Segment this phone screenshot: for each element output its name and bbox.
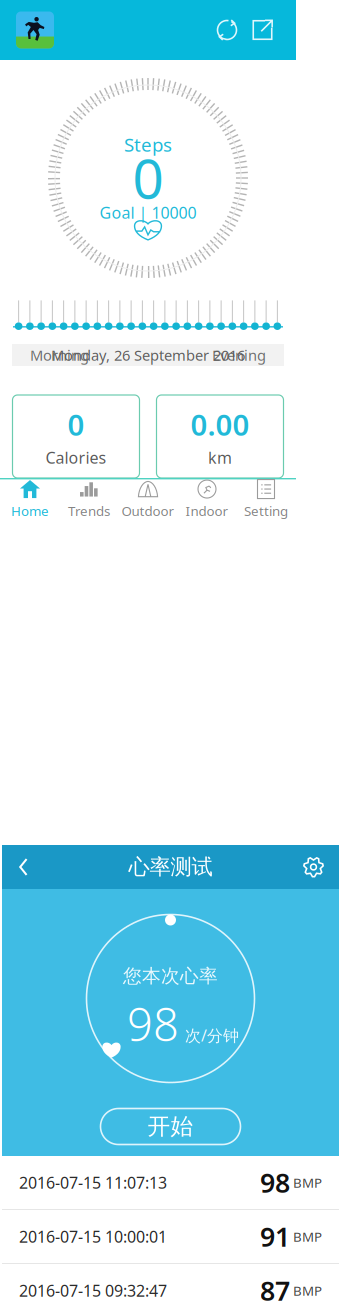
button[interactable]: Outdoor: [118, 479, 177, 519]
staticText: km: [208, 447, 232, 468]
staticText: 心率测试: [128, 854, 212, 880]
staticText: Home: [11, 502, 49, 520]
staticText: 2016-07-15 11:07:13: [19, 1172, 167, 1193]
staticText: 开始: [147, 1113, 193, 1140]
staticText: Setting: [244, 502, 288, 520]
button[interactable]: Indoor: [177, 479, 236, 519]
button[interactable]: 2016-07-15 11:07:13: [2, 1156, 339, 1209]
staticText: Steps: [124, 132, 172, 157]
button[interactable]: 0: [12, 395, 139, 478]
staticText: Morning: [30, 345, 89, 365]
staticText: 98: [260, 1165, 290, 1200]
staticText: Evening: [212, 345, 266, 365]
button[interactable]: 2016-07-15 10:00:01: [2, 1210, 339, 1263]
staticText: 次/分钟: [185, 1025, 239, 1046]
staticText: 0.00: [190, 405, 249, 444]
button[interactable]: 2016-07-15 09:32:47: [2, 1264, 339, 1301]
staticText: BMP: [290, 1228, 322, 1245]
button[interactable]: 开始: [100, 1108, 240, 1144]
button[interactable]: 0.00: [156, 395, 283, 478]
staticText: 87: [260, 1273, 290, 1301]
staticText: Outdoor: [121, 502, 174, 520]
staticText: 2016-07-15 09:32:47: [19, 1280, 167, 1301]
staticText: BMP: [290, 1282, 322, 1299]
button[interactable]: Back: [8, 848, 39, 886]
staticText: 0: [67, 405, 84, 444]
staticText: Calories: [45, 447, 106, 468]
staticText: 91: [260, 1219, 290, 1254]
staticText: BMP: [290, 1174, 322, 1191]
button[interactable]: Refresh: [209, 12, 245, 48]
staticText: Monday, 26 September 2016: [51, 345, 245, 365]
staticText: 2016-07-15 10:00:01: [19, 1226, 167, 1247]
button[interactable]: Settings: [294, 847, 333, 886]
button[interactable]: Share: [245, 12, 280, 47]
staticText: Goal | 10000: [99, 202, 196, 223]
button[interactable]: Home: [0, 479, 59, 519]
staticText: 0: [132, 141, 163, 214]
staticText: 98: [127, 994, 179, 1054]
staticText: Trends: [68, 502, 110, 520]
staticText: Indoor: [185, 502, 228, 520]
staticText: 您本次心率: [123, 965, 218, 988]
button[interactable]: Setting: [236, 479, 295, 519]
button[interactable]: Trends: [59, 479, 118, 519]
